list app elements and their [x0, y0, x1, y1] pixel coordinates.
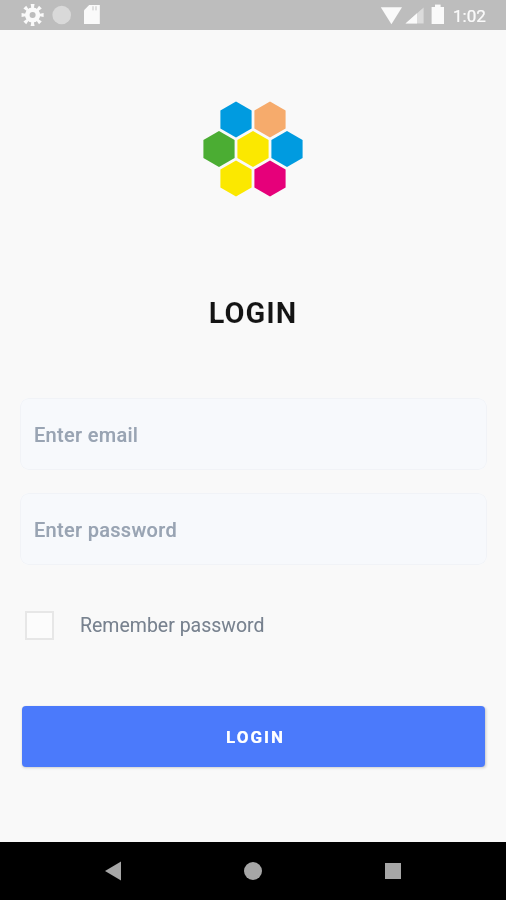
- staticText: Remember password: [80, 614, 265, 637]
- button[interactable]: Enter password: [20, 493, 487, 565]
- button[interactable]: Recents: [363, 842, 423, 900]
- staticText: 1:02: [453, 6, 486, 26]
- button[interactable]: Remember password: [25, 608, 265, 643]
- button[interactable]: Home: [223, 842, 283, 900]
- button[interactable]: LOGIN: [22, 706, 485, 767]
- button[interactable]: Enter email: [20, 398, 487, 470]
- staticText: LOGIN: [226, 727, 285, 747]
- staticText: Enter password: [34, 518, 177, 541]
- staticText: Enter email: [34, 423, 139, 446]
- button[interactable]: Back: [83, 842, 143, 900]
- staticText: LOGIN: [0, 296, 506, 330]
